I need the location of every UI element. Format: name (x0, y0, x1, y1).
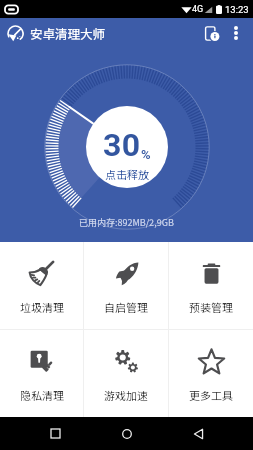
button[interactable]: 自启管理 (84, 242, 168, 329)
button[interactable]: Recent apps (39, 417, 72, 450)
staticText: 自启管理 (104, 299, 148, 315)
staticText: 4G (192, 4, 204, 15)
staticText: % (141, 147, 151, 162)
button[interactable]: Home (110, 417, 143, 450)
button[interactable]: Release memory (44, 64, 210, 230)
button[interactable]: 预装管理 (169, 242, 253, 329)
staticText: 预装管理 (189, 299, 233, 315)
button[interactable]: Back (182, 417, 215, 450)
button[interactable]: 隐私清理 (0, 330, 83, 417)
staticText: 13:23 (225, 4, 249, 15)
button[interactable]: 更多工具 (169, 330, 253, 417)
staticText: 更多工具 (189, 387, 233, 403)
staticText: 30 (103, 126, 141, 164)
button[interactable]: More options (226, 18, 246, 48)
button[interactable]: App info (198, 18, 226, 48)
staticText: 游戏加速 (104, 387, 148, 403)
button[interactable]: 游戏加速 (84, 330, 168, 417)
staticText: 隐私清理 (20, 387, 64, 403)
staticText: 安卓清理大师 (30, 24, 106, 42)
button[interactable]: 垃圾清理 (0, 242, 83, 329)
staticText: 垃圾清理 (20, 299, 64, 315)
staticText: 点击释放 (105, 166, 149, 182)
staticText: 已用内存:892MB/2,9GB (79, 216, 174, 229)
